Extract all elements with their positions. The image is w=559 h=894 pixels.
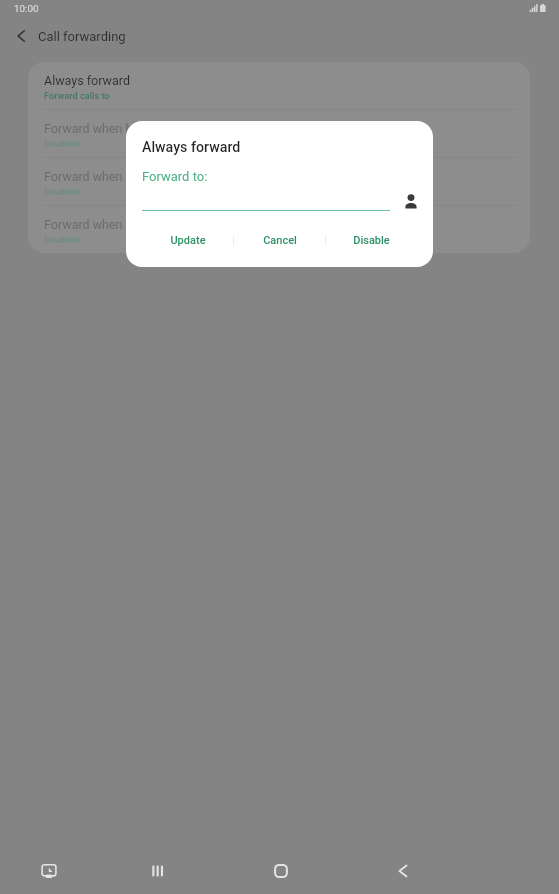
staticText: Disabled [44, 138, 80, 149]
staticText: Forward when unanswered [44, 169, 194, 184]
staticText: 10:00 [14, 3, 39, 14]
staticText: Always forward [142, 139, 241, 156]
button[interactable]: Recent apps [135, 856, 181, 886]
staticText: Update [170, 234, 206, 247]
staticText: Always forward [44, 73, 130, 88]
button[interactable]: Forward when unreachable [28, 206, 530, 253]
staticText: Forward when unreachable [44, 217, 194, 232]
staticText: Call forwarding [38, 29, 126, 44]
staticText: Forward calls to [44, 90, 110, 101]
button[interactable]: Choose contact [395, 185, 427, 217]
button[interactable]: Home [258, 856, 304, 886]
button[interactable]: Disable [326, 225, 417, 255]
button[interactable]: Forward when unanswered [28, 158, 530, 205]
button[interactable]: Forward when busy [28, 110, 530, 157]
button[interactable]: Cancel [234, 225, 325, 255]
button[interactable]: Hide keyboard [26, 856, 72, 886]
staticText: Cancel [263, 234, 297, 247]
staticText: Forward to: [142, 169, 208, 184]
button[interactable]: Back [380, 856, 426, 886]
staticText: Disable [353, 234, 390, 247]
button[interactable]: Update [142, 225, 233, 255]
staticText: Forward when busy [44, 121, 152, 136]
staticText: Disabled [44, 234, 80, 245]
button[interactable]: Navigate up [6, 21, 36, 51]
staticText: Disabled [44, 186, 80, 197]
button[interactable]: Always forward [28, 62, 530, 109]
